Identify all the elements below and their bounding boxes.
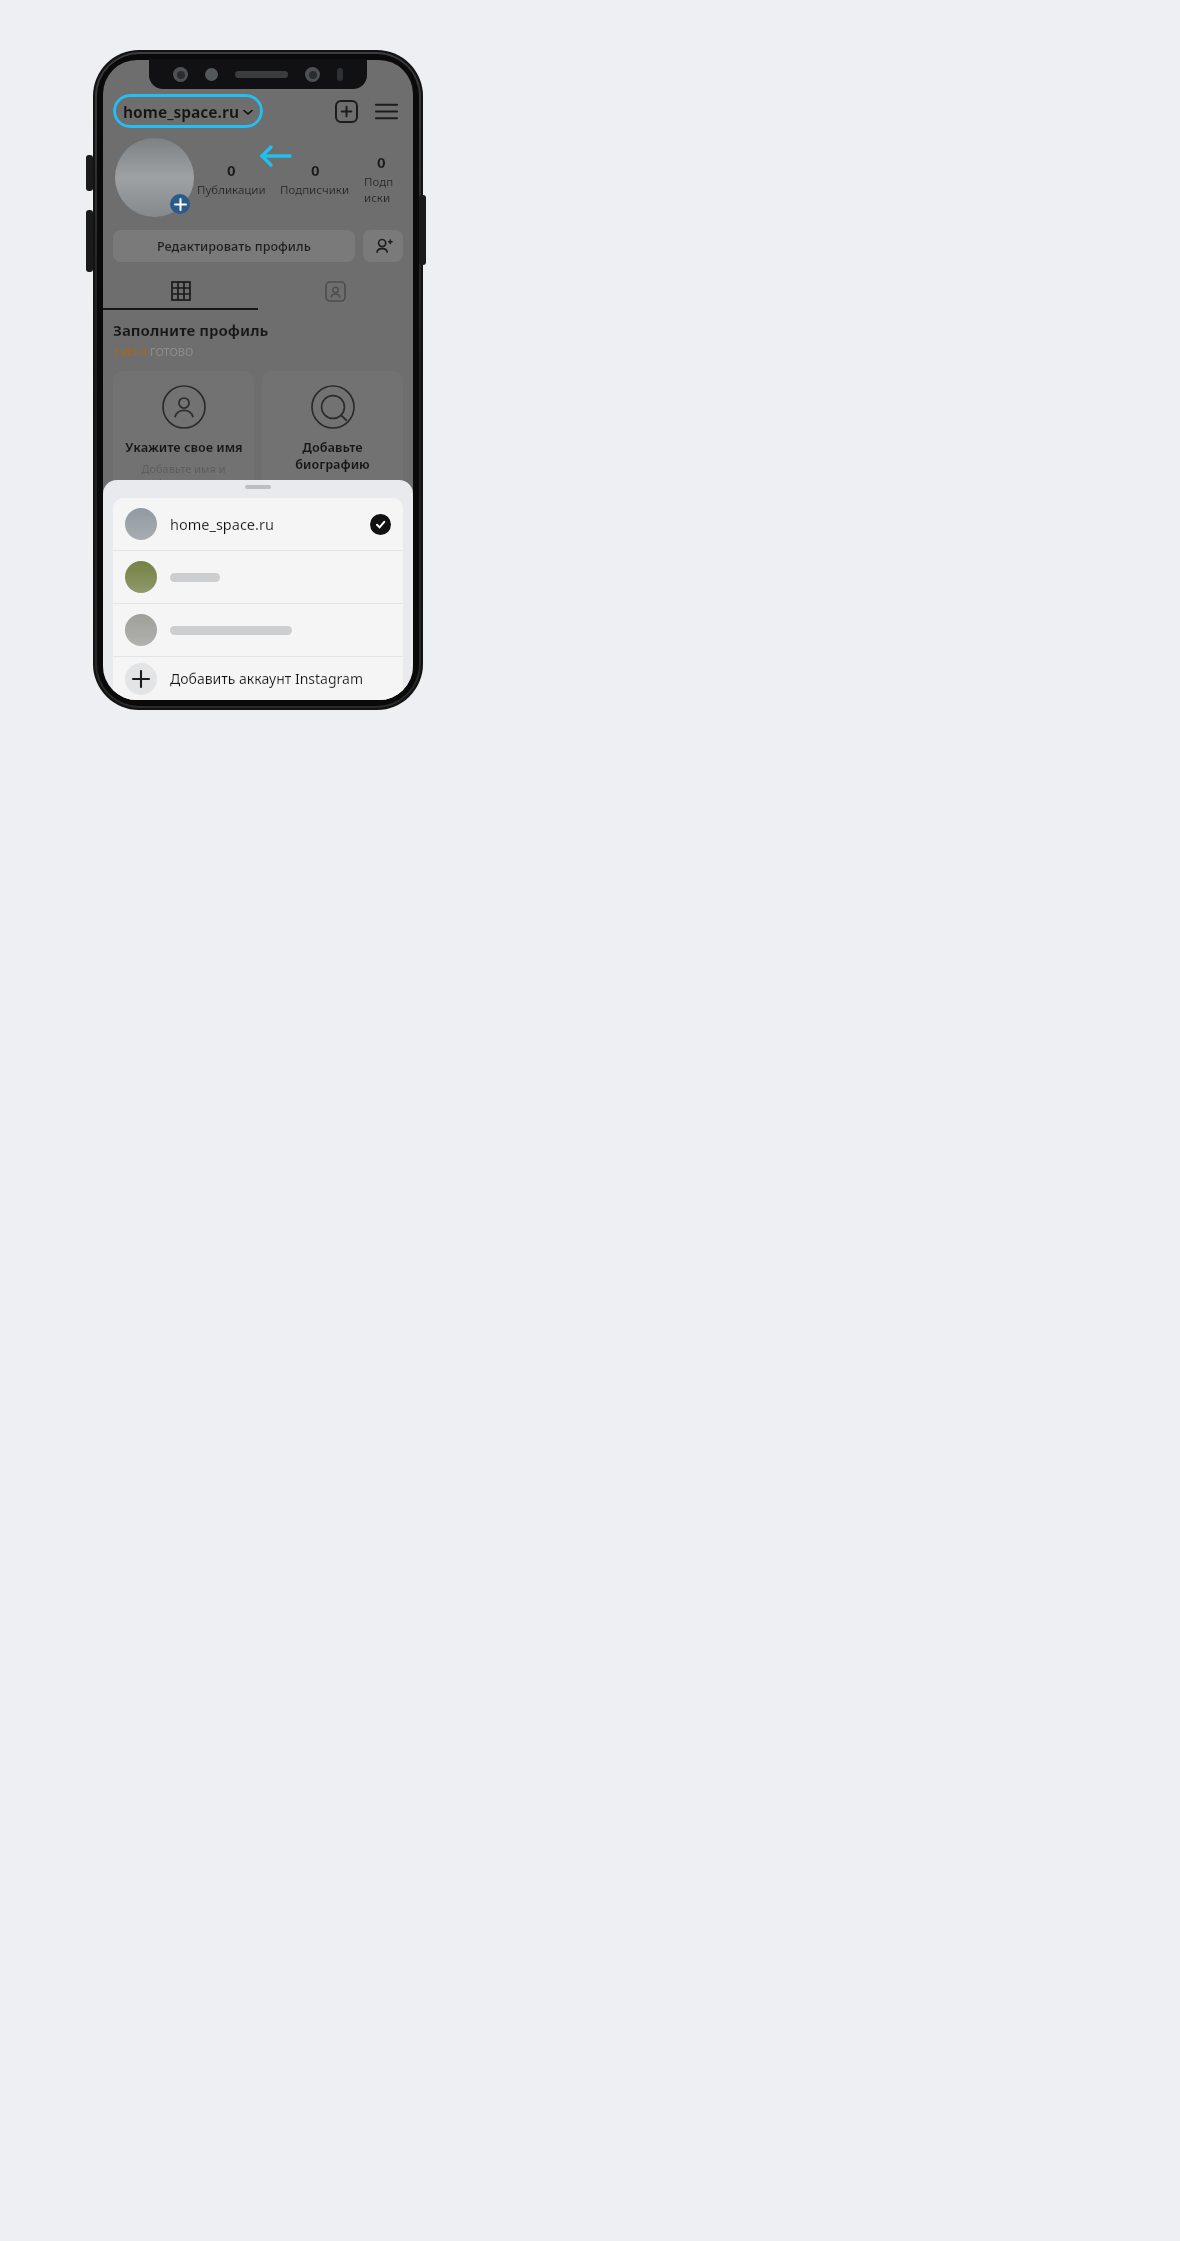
staticText: Добавить аккаунт Instagram (170, 669, 363, 688)
button[interactable] (113, 551, 403, 603)
staticText: Добавьте биографию (268, 439, 397, 473)
staticText: 1 ИЗ 4 (113, 344, 150, 359)
staticText: 0 (311, 160, 320, 180)
button[interactable]: Add story (170, 194, 190, 214)
button[interactable]: Tagged (258, 274, 413, 308)
staticText: Укажите свое имя (125, 439, 243, 456)
button[interactable]: Menu (369, 94, 403, 128)
staticText: Подписки (364, 174, 399, 206)
button[interactable]: Добавьте биографию (262, 371, 403, 535)
button[interactable]: Add people (363, 230, 403, 262)
staticText: Редактировать профиль (157, 238, 311, 255)
staticText: 0 (377, 152, 386, 172)
staticText: Заполните профиль (113, 320, 269, 340)
button[interactable]: Grid (103, 274, 258, 308)
button[interactable]: home_space.ru (113, 94, 263, 128)
button[interactable]: home_space.ru (113, 498, 403, 550)
button[interactable]: Добавить аккаунт Instagram (113, 657, 403, 700)
button[interactable] (113, 604, 403, 656)
staticText: home_space.ru (123, 101, 239, 122)
button[interactable]: Create (329, 94, 363, 128)
staticText: ГОТОВО (150, 344, 194, 359)
staticText: home_space.ru (170, 514, 274, 534)
staticText: Публикации (197, 182, 266, 198)
button[interactable]: Укажите свое имя (113, 371, 254, 532)
staticText: Подписчики (280, 182, 350, 198)
staticText: Добавьте имя и фамилию, чтобы друзья зна… (119, 461, 248, 518)
staticText: Расскажите своим подписчикам немного о с… (268, 478, 397, 521)
button[interactable]: Редактировать профиль (113, 230, 355, 262)
staticText: 0 (227, 160, 236, 180)
